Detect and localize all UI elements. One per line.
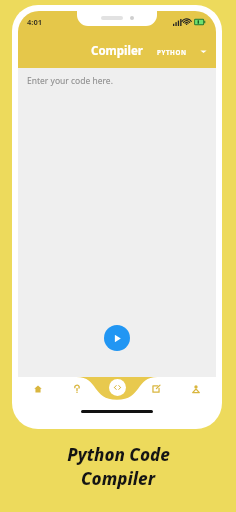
button[interactable]: Run code — [104, 325, 130, 351]
staticText: Compiler — [91, 43, 143, 59]
staticText: Python Code — [67, 443, 170, 466]
button[interactable]: Saved — [136, 377, 176, 401]
button[interactable]: PYTHON — [157, 47, 208, 56]
button[interactable]: Compiler — [91, 43, 143, 59]
button[interactable]: Compiler — [109, 379, 126, 396]
button[interactable]: Profile — [176, 377, 216, 401]
staticText: 4:01 — [27, 17, 42, 27]
button[interactable]: Help — [57, 377, 96, 401]
staticText: PYTHON — [157, 48, 187, 56]
staticText: Enter your code here. — [27, 75, 113, 87]
staticText: Compiler — [81, 467, 155, 490]
button[interactable]: Home — [18, 377, 57, 401]
